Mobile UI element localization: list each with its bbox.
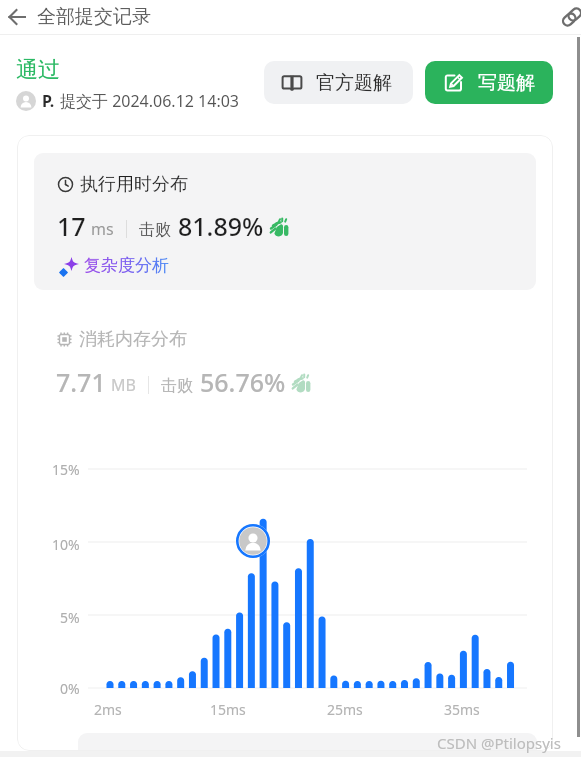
staticText: P. (42, 90, 55, 112)
staticText: 17 (57, 209, 86, 243)
staticText: 消耗内存分布 (79, 328, 187, 351)
staticText: 7.71 (56, 365, 106, 399)
button[interactable]: 复杂度分析 (57, 254, 169, 276)
button[interactable]: Back (4, 4, 30, 30)
staticText: 执行用时分布 (80, 173, 188, 196)
button[interactable]: 写题解 (425, 61, 553, 104)
staticText: 提交于 2024.06.12 14:03 (60, 90, 240, 112)
staticText: 5% (60, 608, 80, 627)
staticText: 通过 (16, 56, 60, 84)
staticText: 10% (52, 535, 80, 554)
button[interactable]: Copy link (555, 0, 581, 34)
staticText: 81.89% (178, 209, 264, 243)
staticText: 官方题解 (316, 71, 392, 95)
staticText: ms (91, 218, 114, 240)
staticText: 15% (52, 460, 80, 479)
staticText: 0% (60, 679, 80, 698)
staticText: 击败 (161, 376, 193, 396)
staticText: 全部提交记录 (37, 5, 151, 29)
staticText: 写题解 (478, 71, 535, 95)
staticText: 25ms (327, 700, 363, 719)
staticText: 15ms (210, 700, 246, 719)
staticText: 击败 (139, 220, 171, 240)
staticText: MB (111, 374, 136, 396)
staticText: 35ms (444, 700, 480, 719)
staticText: 56.76% (200, 365, 286, 399)
staticText: CSDN @Ptilopsyis (437, 733, 561, 753)
button[interactable]: 官方题解 (264, 61, 413, 104)
staticText: 2ms (94, 700, 122, 719)
staticText: 复杂度分析 (84, 255, 169, 276)
